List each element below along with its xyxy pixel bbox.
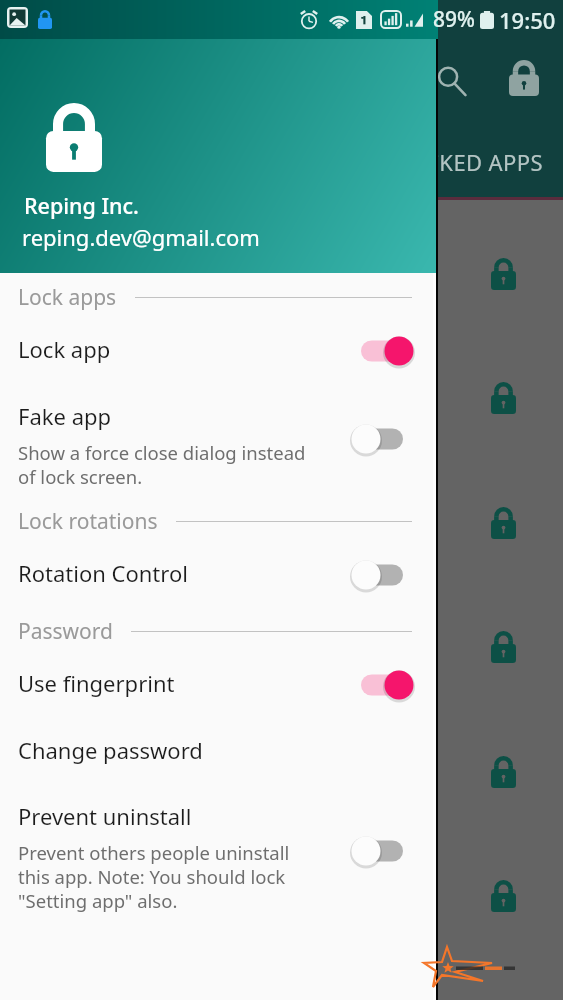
staticText: 89% bbox=[433, 5, 475, 34]
button[interactable]: Use fingerprint bbox=[0, 656, 438, 712]
staticText: Password bbox=[18, 617, 113, 646]
button[interactable]: LOCKED APPS bbox=[396, 147, 543, 177]
button[interactable]: Prevent uninstall bbox=[0, 789, 438, 917]
staticText: Rotation Control bbox=[18, 558, 188, 588]
staticText: Reping Inc. bbox=[24, 191, 139, 220]
staticText: Prevent uninstall bbox=[18, 801, 192, 831]
button[interactable]: Lock app bbox=[0, 322, 438, 378]
staticText: Change password bbox=[18, 735, 203, 765]
staticText: Use fingerprint bbox=[18, 668, 175, 698]
button[interactable]: Lock bbox=[503, 57, 545, 99]
staticText: Prevent others people uninstall this app… bbox=[18, 840, 290, 913]
button[interactable]: Rotation Control bbox=[0, 546, 438, 602]
staticText: Fake app bbox=[18, 401, 112, 431]
button[interactable]: Fake app bbox=[0, 389, 438, 493]
button[interactable]: Off bbox=[347, 830, 409, 872]
button[interactable]: Search bbox=[428, 57, 476, 105]
staticText: reping.dev@gmail.com bbox=[22, 222, 260, 252]
button[interactable]: Off bbox=[347, 554, 409, 596]
button[interactable]: Off bbox=[347, 418, 409, 460]
button[interactable]: On bbox=[347, 330, 409, 372]
button[interactable]: On bbox=[347, 664, 409, 706]
button[interactable]: Change password bbox=[0, 723, 438, 779]
staticText: Lock rotations bbox=[18, 507, 158, 536]
staticText: Lock app bbox=[18, 334, 111, 364]
staticText: 19:50 bbox=[499, 5, 556, 35]
staticText: Lock apps bbox=[18, 283, 117, 312]
staticText: Show a force close dialog instead of loc… bbox=[18, 440, 306, 489]
